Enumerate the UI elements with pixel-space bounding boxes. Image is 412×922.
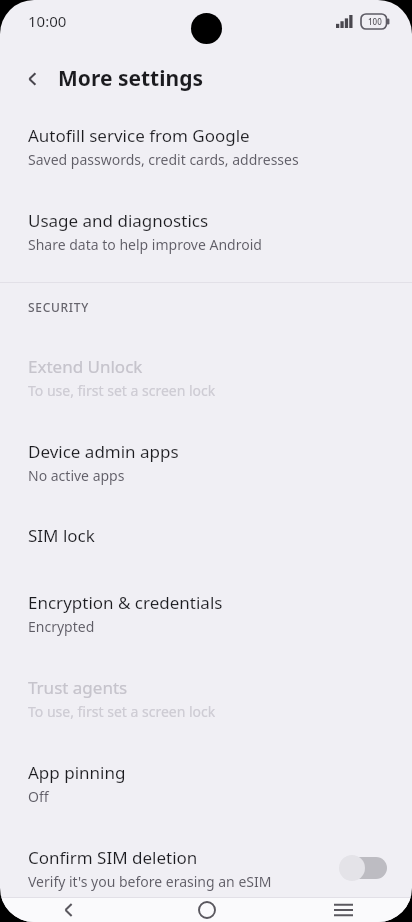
- staticText: Share data to help improve Android: [28, 235, 262, 254]
- button[interactable]: Confirm SIM deletion: [0, 839, 412, 897]
- button[interactable]: Trust agents: [0, 669, 412, 727]
- staticText: Encrypted: [28, 617, 95, 636]
- staticText: Usage and diagnostics: [28, 209, 209, 232]
- staticText: Encryption & credentials: [28, 591, 223, 614]
- staticText: To use, first set a screen lock: [28, 381, 216, 400]
- button[interactable]: Back: [14, 60, 52, 98]
- staticText: SIM lock: [28, 524, 95, 547]
- staticText: No active apps: [28, 466, 125, 485]
- staticText: 100: [368, 16, 382, 27]
- staticText: To use, first set a screen lock: [28, 702, 216, 721]
- staticText: 10:00: [28, 11, 67, 31]
- staticText: Autofill service from Google: [28, 124, 250, 147]
- staticText: App pinning: [28, 761, 126, 784]
- button[interactable]: Confirm SIM deletion: [338, 852, 390, 884]
- button[interactable]: App pinning: [0, 754, 412, 812]
- button[interactable]: Device admin apps: [0, 433, 412, 491]
- button[interactable]: Encryption & credentials: [0, 584, 412, 642]
- staticText: Verify it's you before erasing an eSIM: [28, 872, 272, 891]
- button[interactable]: Extend Unlock: [0, 348, 412, 406]
- staticText: Device admin apps: [28, 440, 179, 463]
- button[interactable]: Back: [0, 898, 138, 922]
- staticText: More settings: [58, 64, 203, 93]
- staticText: Trust agents: [28, 676, 128, 699]
- staticText: Off: [28, 787, 49, 806]
- button[interactable]: Autofill service from Google: [0, 114, 412, 178]
- button[interactable]: Usage and diagnostics: [0, 199, 412, 263]
- staticText: Saved passwords, credit cards, addresses: [28, 150, 299, 169]
- staticText: Extend Unlock: [28, 355, 143, 378]
- button[interactable]: Recent apps: [275, 898, 412, 922]
- button[interactable]: SIM lock: [0, 519, 412, 551]
- staticText: Confirm SIM deletion: [28, 846, 198, 869]
- staticText: SECURITY: [28, 299, 89, 315]
- button[interactable]: Home: [138, 898, 275, 922]
